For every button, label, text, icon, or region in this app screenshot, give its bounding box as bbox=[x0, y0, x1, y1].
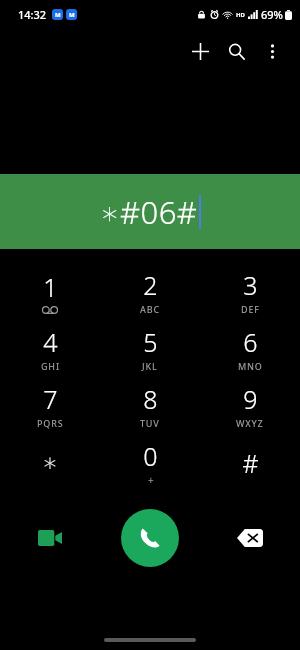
button[interactable]: 0 bbox=[100, 434, 200, 491]
staticText: 9 bbox=[243, 382, 258, 416]
staticText: 3 bbox=[243, 268, 258, 302]
button[interactable]: Search bbox=[218, 33, 254, 69]
button[interactable]: Add contact bbox=[182, 33, 218, 69]
staticText: M bbox=[55, 11, 61, 19]
button[interactable]: 2 bbox=[100, 263, 200, 320]
button[interactable]: 3 bbox=[200, 263, 300, 320]
staticText: + bbox=[148, 473, 154, 487]
button[interactable]: # bbox=[200, 434, 300, 491]
staticText: MNO bbox=[238, 360, 263, 372]
staticText: ABC bbox=[140, 303, 160, 315]
button[interactable]: 9 bbox=[200, 377, 300, 434]
staticText: DEF bbox=[241, 303, 260, 315]
staticText: HD bbox=[236, 11, 245, 19]
staticText: TUV bbox=[140, 417, 160, 429]
button[interactable]: Call bbox=[121, 509, 179, 567]
button[interactable]: 4 bbox=[0, 320, 100, 377]
staticText: 5 bbox=[143, 325, 158, 359]
button[interactable]: Backspace bbox=[200, 497, 300, 579]
staticText: 7 bbox=[43, 382, 58, 416]
staticText: 8 bbox=[143, 382, 158, 416]
staticText: JKL bbox=[142, 360, 158, 372]
staticText: GHI bbox=[41, 360, 60, 372]
staticText: ∗ bbox=[42, 448, 58, 477]
button[interactable]: ∗ bbox=[0, 434, 100, 491]
staticText: 6 bbox=[243, 325, 258, 359]
button[interactable]: 7 bbox=[0, 377, 100, 434]
button[interactable]: 8 bbox=[100, 377, 200, 434]
staticText: 0 bbox=[143, 439, 158, 473]
staticText: WXYZ bbox=[236, 417, 264, 429]
staticText: 1 bbox=[43, 270, 58, 304]
staticText: PQRS bbox=[37, 417, 64, 429]
button[interactable]: Video call bbox=[0, 497, 100, 579]
staticText: 4 bbox=[43, 325, 58, 359]
staticText: ∗#06# bbox=[100, 191, 198, 233]
button[interactable]: ∗#06# bbox=[0, 174, 300, 249]
button[interactable]: 5 bbox=[100, 320, 200, 377]
staticText: 14:32 bbox=[18, 7, 47, 22]
button[interactable]: More options bbox=[254, 33, 290, 69]
staticText: M bbox=[69, 11, 75, 19]
button[interactable]: 1 bbox=[0, 263, 100, 320]
staticText: 69% bbox=[261, 7, 283, 22]
staticText: 2 bbox=[143, 268, 158, 302]
staticText: # bbox=[242, 446, 259, 480]
button[interactable]: 6 bbox=[200, 320, 300, 377]
